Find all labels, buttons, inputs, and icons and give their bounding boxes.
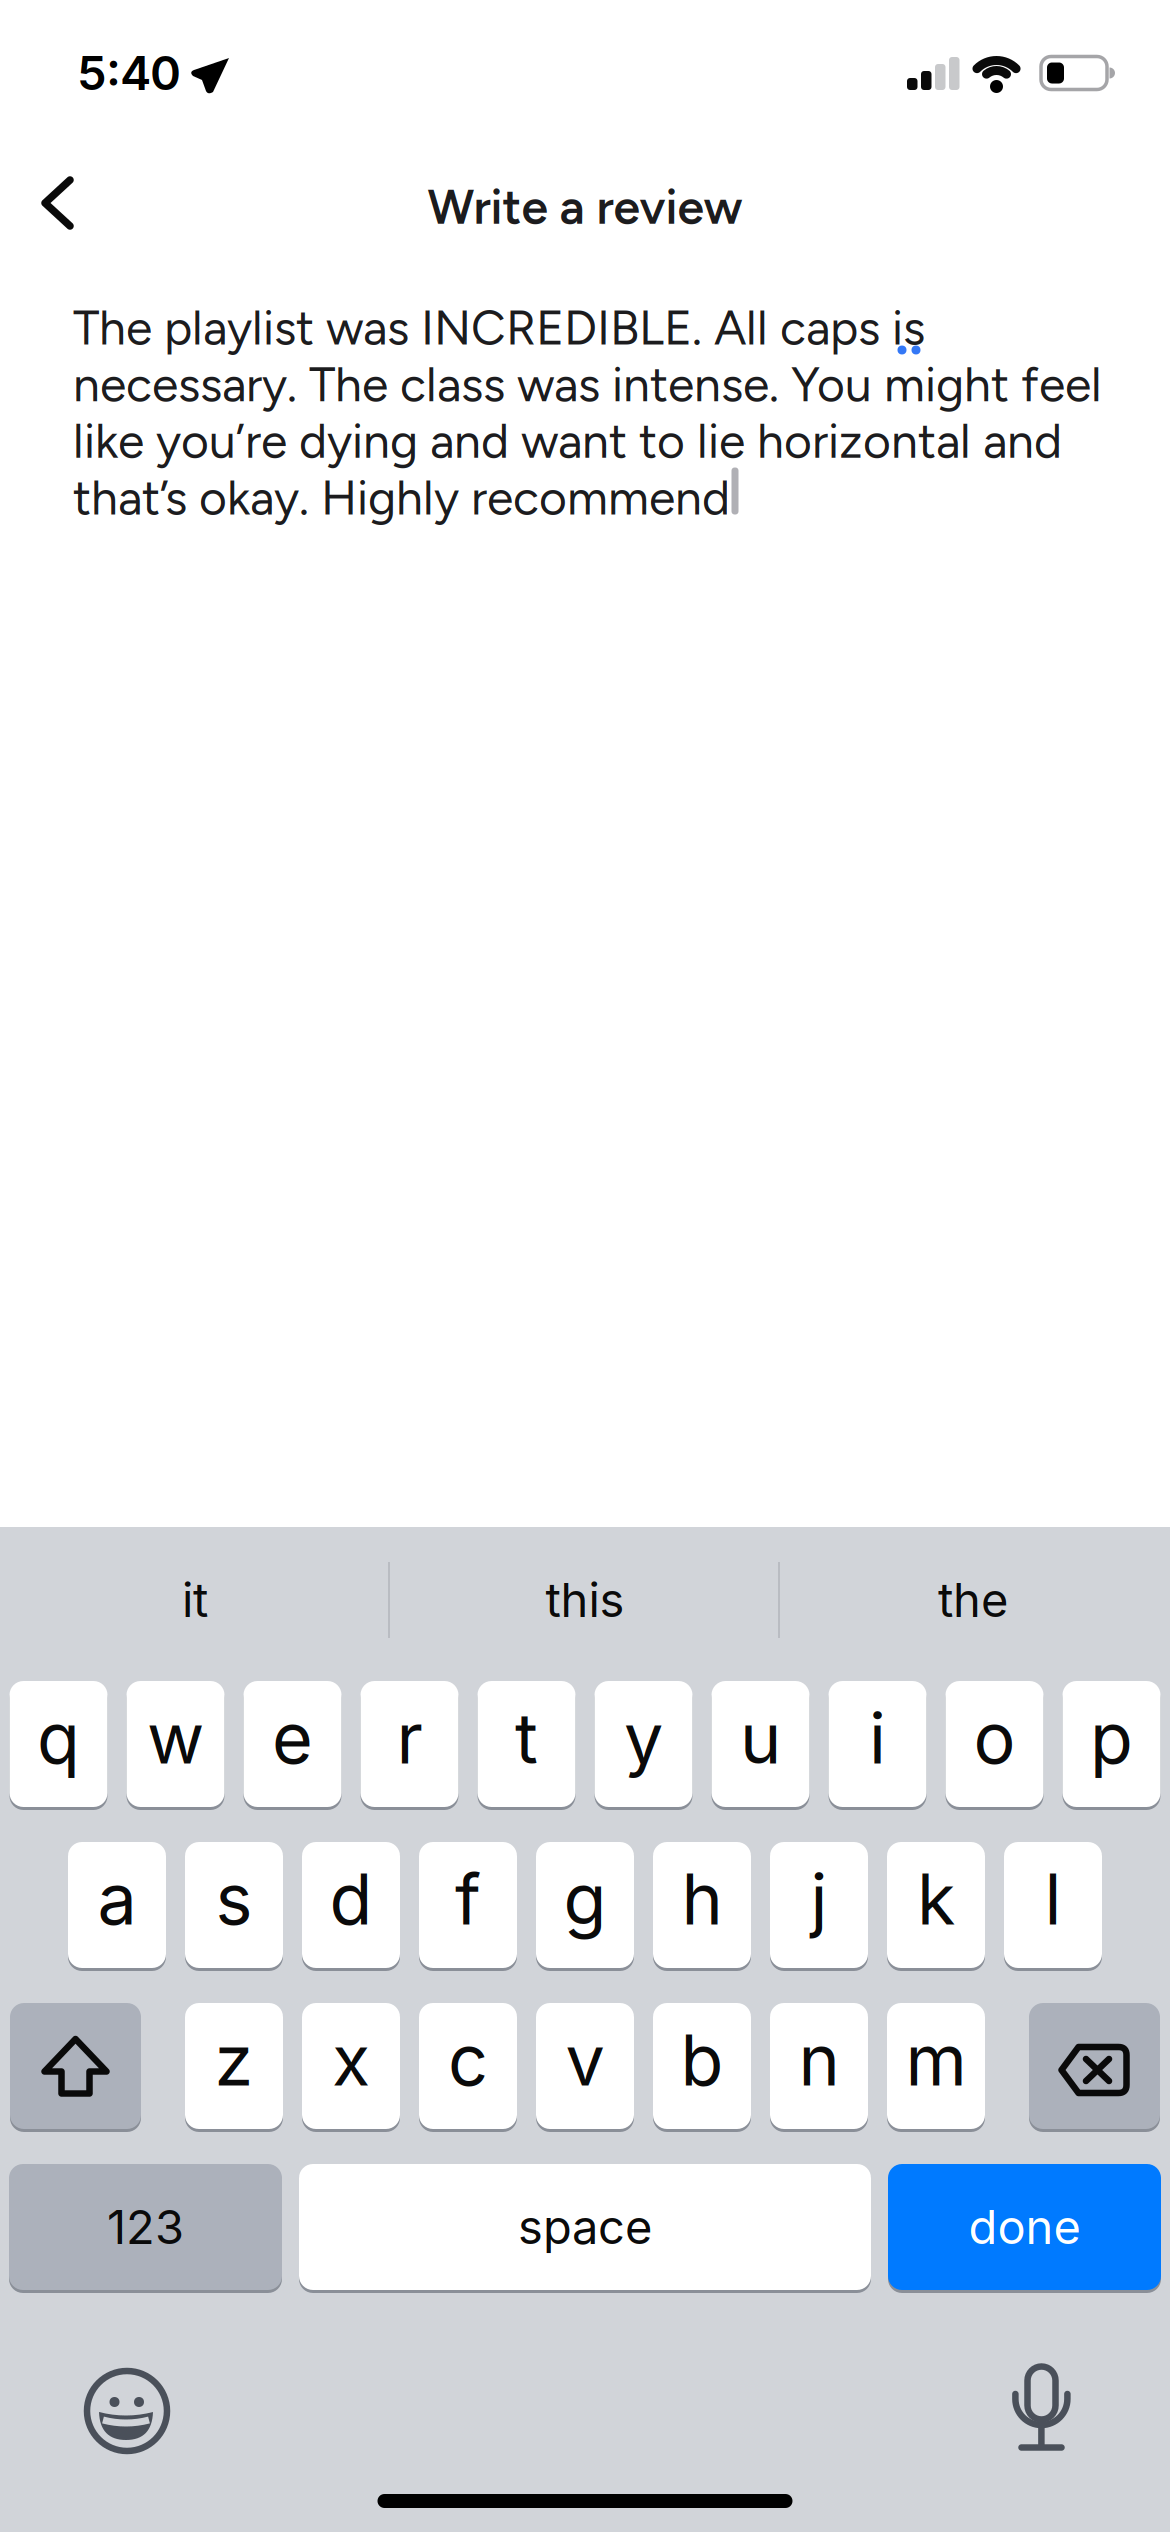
staticText: u [740,1696,781,1780]
staticText: w [147,1696,204,1780]
staticText: i [869,1696,886,1780]
button[interactable]: o [945,1681,1043,1807]
button[interactable]: u [711,1681,809,1807]
button[interactable]: p [1062,1681,1160,1807]
button[interactable]: x [302,2003,400,2129]
staticText: c [448,2018,488,2102]
staticText: p [1090,1696,1133,1780]
button[interactable]: z [185,2003,283,2129]
button[interactable]: d [302,1842,400,1968]
staticText: a [97,1857,136,1941]
button[interactable]: Shift [10,2003,141,2129]
button[interactable]: a [68,1842,166,1968]
button[interactable]: Back [14,159,102,247]
staticText: v [565,2018,604,2102]
button[interactable]: m [887,2003,985,2129]
staticText: z [214,2018,253,2102]
button[interactable]: space [299,2164,871,2290]
staticText: the [938,1572,1008,1628]
button[interactable]: it [5,1540,385,1660]
staticText: x [332,2018,370,2102]
staticText: this [545,1572,624,1628]
staticText: done [968,2199,1080,2255]
staticText: n [798,2018,839,2102]
staticText: g [563,1857,606,1941]
button[interactable]: l [1004,1842,1102,1968]
button[interactable]: Delete [1029,2003,1160,2129]
button[interactable]: f [419,1842,517,1968]
button[interactable]: i [828,1681,926,1807]
staticText: q [37,1696,80,1780]
staticText: o [973,1696,1015,1780]
button[interactable]: the [783,1540,1163,1660]
staticText: h [681,1857,722,1941]
staticText: b [680,2018,723,2102]
staticText: r [396,1696,422,1780]
button[interactable]: q [9,1681,107,1807]
staticText: Write a review [427,178,742,236]
button[interactable]: s [185,1842,283,1968]
button[interactable]: Emoji [70,2354,184,2468]
button[interactable]: done [888,2164,1161,2290]
button[interactable]: b [653,2003,751,2129]
button[interactable]: g [536,1842,634,1968]
button[interactable]: c [419,2003,517,2129]
staticText: m [905,2018,966,2102]
button[interactable]: y [594,1681,692,1807]
staticText: d [329,1857,372,1941]
button[interactable]: j [770,1842,868,1968]
staticText: it [182,1572,208,1628]
button[interactable]: w [126,1681,224,1807]
staticText: space [518,2199,652,2255]
button[interactable]: e [243,1681,341,1807]
button[interactable]: k [887,1842,985,1968]
button[interactable]: this [395,1540,775,1660]
staticText: t [515,1696,538,1780]
staticText: s [215,1857,252,1941]
button[interactable]: 123 [9,2164,282,2290]
button[interactable]: Dictate [986,2350,1100,2464]
button[interactable]: t [477,1681,575,1807]
staticText: f [455,1857,481,1941]
staticText: y [624,1696,663,1780]
button[interactable]: h [653,1842,751,1968]
staticText: e [272,1696,313,1780]
staticText: j [810,1857,827,1941]
staticText: 5:40 [77,45,181,101]
staticText: l [1044,1857,1061,1941]
button[interactable]: r [360,1681,458,1807]
staticText: k [917,1857,955,1941]
button[interactable]: n [770,2003,868,2129]
staticText: The playlist was INCREDIBLE. All caps is… [73,299,1102,526]
button[interactable]: v [536,2003,634,2129]
staticText: 123 [107,2199,184,2255]
